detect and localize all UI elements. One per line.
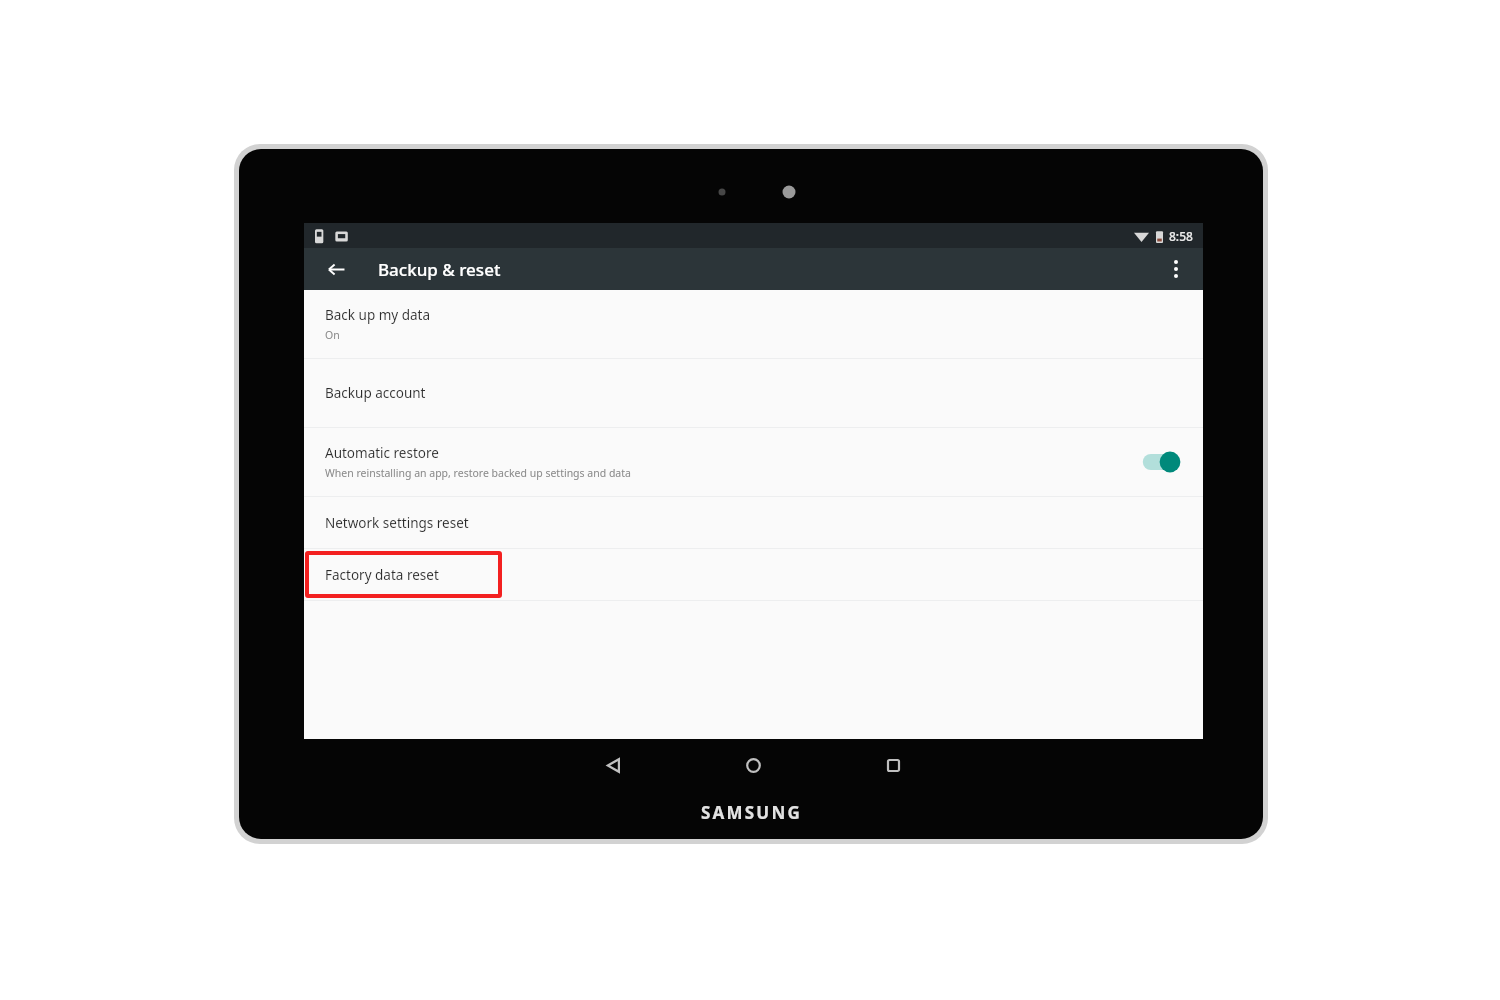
staticText: Network settings reset [325,514,469,532]
staticText: On [325,328,340,342]
staticText: SAMSUNG [701,801,802,824]
staticText: When reinstalling an app, restore backed… [325,466,631,480]
button[interactable]: More options [1157,250,1195,288]
button[interactable]: Automatic restore toggle [1142,449,1182,475]
staticText: Factory data reset [325,566,439,584]
button[interactable]: Network settings reset [304,497,1203,548]
staticText: Automatic restore [325,444,439,462]
button[interactable]: Home [683,743,823,787]
button[interactable]: Recent apps [823,743,963,787]
button[interactable]: Factory data reset [304,549,1203,600]
button[interactable]: Back [544,743,683,787]
button[interactable]: Automatic restore [304,428,1203,496]
staticText: Back up my data [325,306,431,324]
staticText: Backup & reset [378,258,501,281]
button[interactable]: Back up my data [304,290,1203,358]
button[interactable]: Backup account [304,359,1203,427]
staticText: Backup account [325,384,426,402]
button[interactable]: Back [316,249,356,289]
staticText: 8:58 [1169,228,1193,244]
